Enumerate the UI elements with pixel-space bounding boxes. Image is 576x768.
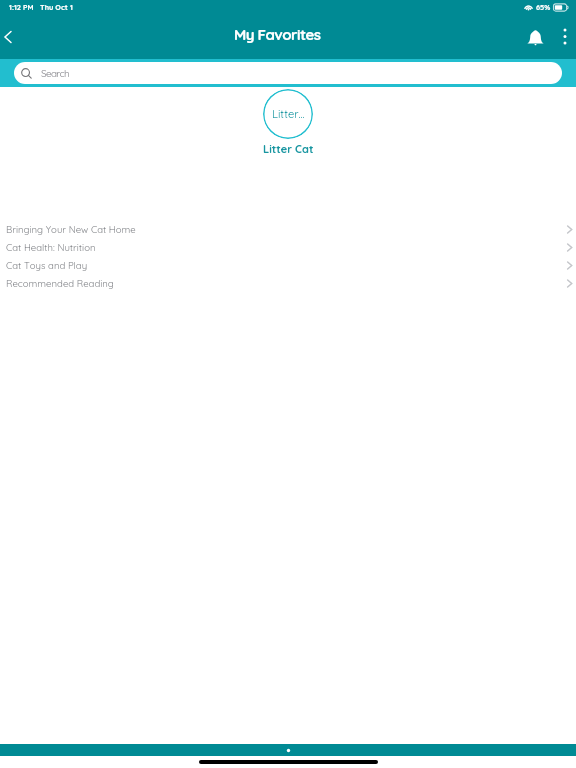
staticText: Bringing Your New Cat Home	[6, 223, 136, 235]
button[interactable]: Litter Cat	[263, 89, 313, 139]
button[interactable]: Cat Health: Nutrition	[0, 238, 576, 256]
button[interactable]: More options	[554, 24, 576, 54]
button[interactable]: Cat Toys and Play	[0, 256, 576, 274]
staticText: Thu Oct 1	[40, 3, 73, 12]
button[interactable]: Back	[0, 28, 22, 50]
staticText: Litter Cat	[263, 142, 314, 156]
button[interactable]: Recommended Reading	[0, 274, 576, 292]
staticText: Cat Toys and Play	[6, 259, 88, 271]
staticText: Litter...	[272, 107, 305, 121]
staticText: My Favorites	[234, 25, 321, 44]
staticText: Cat Health: Nutrition	[6, 241, 96, 253]
staticText: 65%	[536, 3, 551, 12]
staticText: 1:12 PM	[9, 3, 34, 12]
button[interactable]: Bringing Your New Cat Home	[0, 220, 576, 238]
button[interactable]: Notifications	[520, 24, 550, 54]
staticText: Search	[41, 67, 70, 80]
button[interactable]: Page indicator	[0, 744, 576, 756]
staticText: Recommended Reading	[6, 277, 114, 289]
button[interactable]: Search	[14, 62, 562, 84]
